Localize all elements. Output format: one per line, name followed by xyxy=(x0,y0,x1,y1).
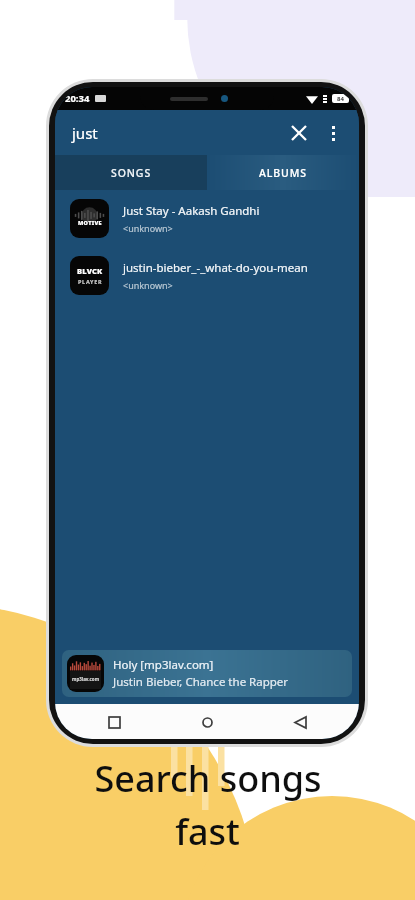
button[interactable]: MOTIVE xyxy=(55,190,359,247)
staticText: PLAYER xyxy=(78,278,103,285)
staticText: Holy [mp3lav.com] xyxy=(113,657,214,673)
staticText: Justin Bieber, Chance the Rapper xyxy=(113,674,289,690)
staticText: 84 xyxy=(337,95,344,103)
button[interactable]: SONGS xyxy=(55,155,207,190)
staticText: fast xyxy=(175,807,240,856)
button[interactable]: Clear search xyxy=(283,117,315,149)
button[interactable]: Recent apps xyxy=(101,709,127,735)
button[interactable]: More options xyxy=(318,118,348,148)
button[interactable]: Home xyxy=(194,709,220,735)
staticText: BLVCK xyxy=(77,266,103,276)
staticText: ALBUMS xyxy=(259,166,307,180)
staticText: Just Stay - Aakash Gandhi xyxy=(123,203,260,219)
staticText: mp3lav.com xyxy=(72,676,100,682)
staticText: just xyxy=(72,123,98,143)
button[interactable]: BLVCK xyxy=(55,247,359,304)
button[interactable]: ALBUMS xyxy=(207,155,359,190)
staticText: <unknown> xyxy=(123,222,173,234)
button[interactable]: Back xyxy=(287,709,313,735)
button[interactable]: mp3lav.com xyxy=(62,650,352,697)
staticText: <unknown> xyxy=(123,279,173,291)
staticText: SONGS xyxy=(111,166,152,180)
staticText: justin-bieber_-_what-do-you-mean xyxy=(123,260,308,276)
staticText: MOTIVE xyxy=(78,219,102,226)
staticText: 20:34 xyxy=(65,92,90,105)
staticText: Search songs xyxy=(94,754,322,803)
